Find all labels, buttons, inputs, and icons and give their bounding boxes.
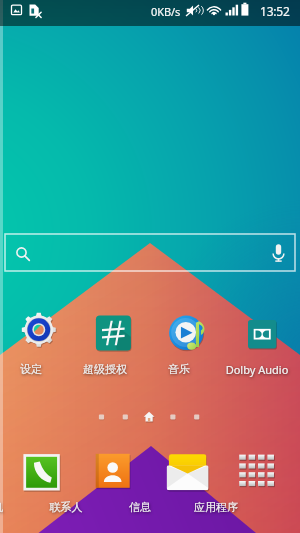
button[interactable]: 手机 (0, 454, 74, 514)
staticText: 设定 (0, 362, 68, 376)
button[interactable]: Search (5, 234, 295, 271)
button[interactable]: 音乐 (148, 312, 222, 372)
button[interactable]: Dolby Audio (222, 312, 300, 372)
staticText: 超级授权 (68, 362, 142, 376)
staticText: 应用程序 (177, 500, 255, 514)
staticText: 13:52 (260, 3, 290, 19)
staticText: 手机 (0, 500, 29, 514)
button[interactable]: 超级授权 (74, 312, 148, 372)
button[interactable]: 应用程序 (222, 454, 300, 514)
staticText: 0KB/s (151, 4, 181, 19)
staticText: 音乐 (142, 362, 216, 376)
button[interactable]: 联系人 (74, 454, 148, 514)
staticText: 信息 (103, 500, 177, 514)
staticText: 联系人 (29, 500, 103, 514)
staticText: Dolby Audio (218, 362, 296, 377)
button[interactable]: 设定 (0, 312, 74, 372)
button[interactable]: 信息 (148, 454, 222, 514)
